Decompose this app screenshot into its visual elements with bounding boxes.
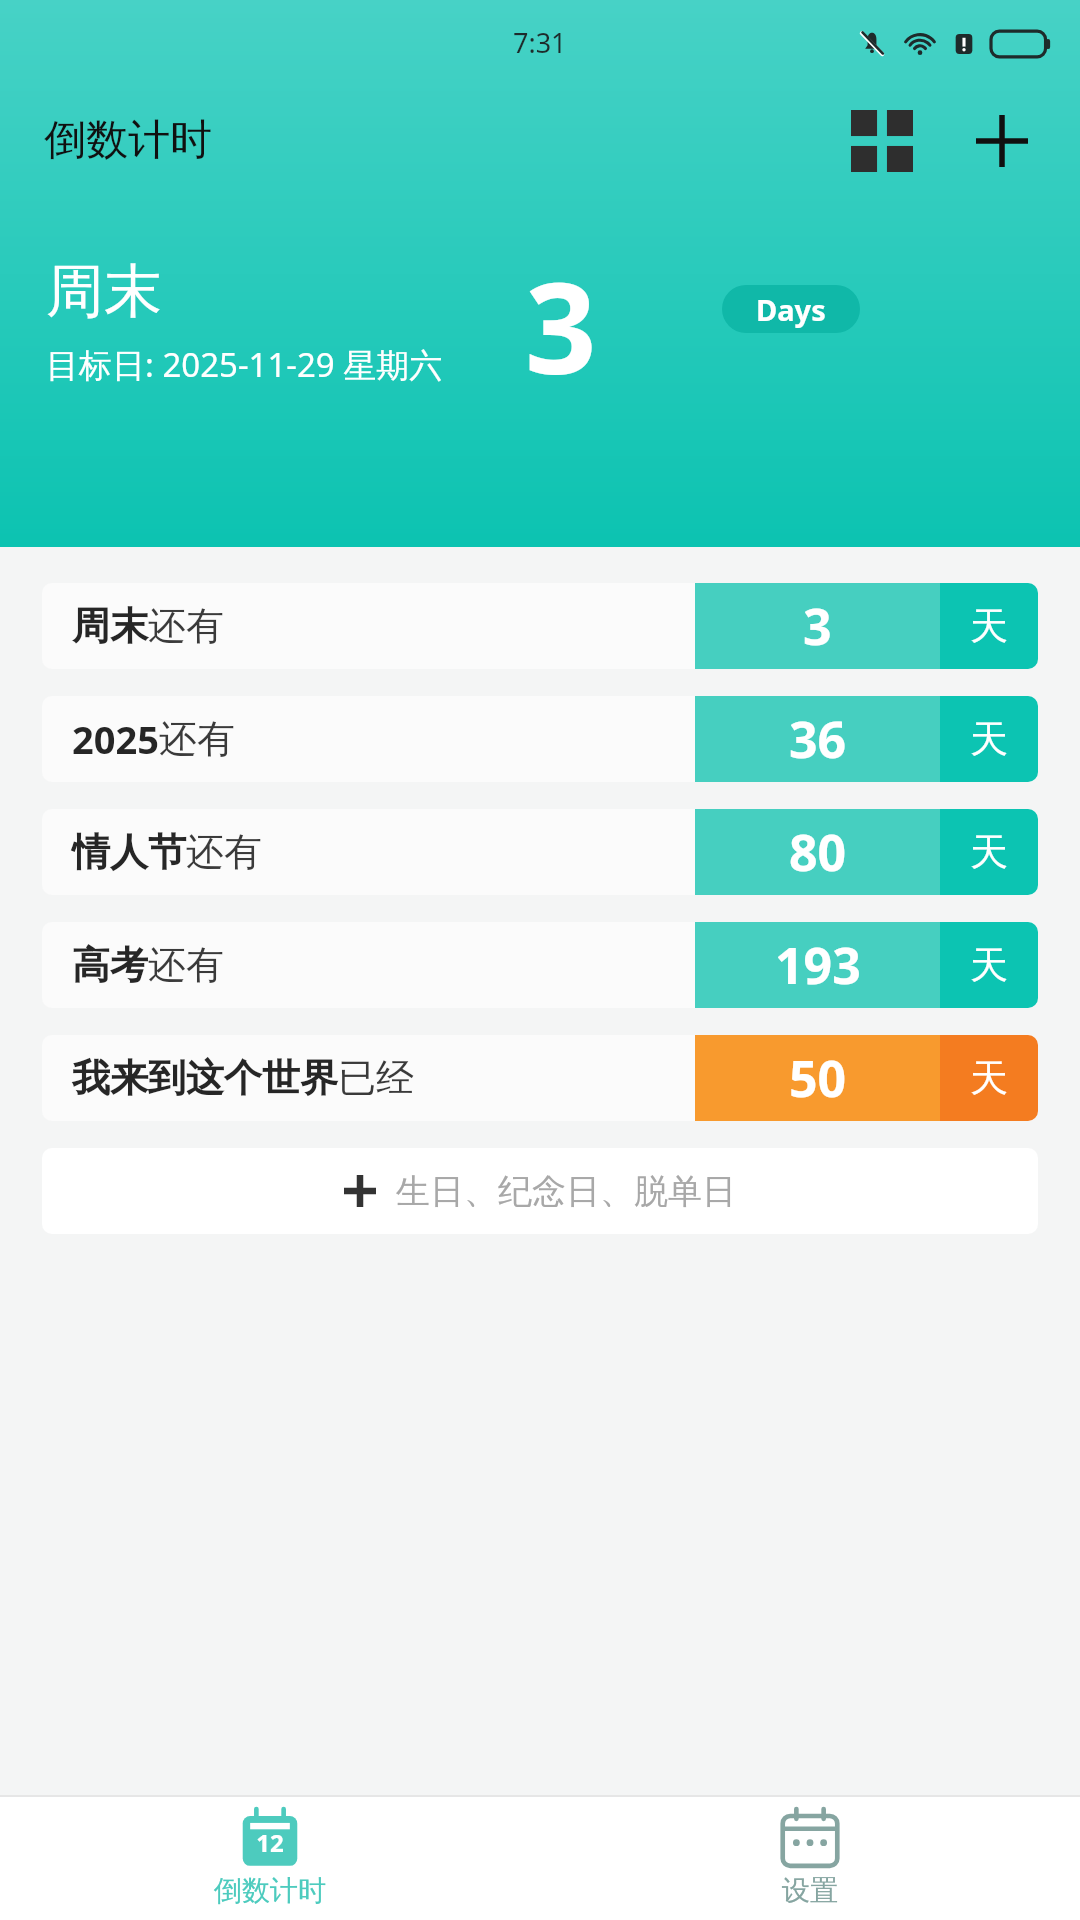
staticText: 12	[256, 1826, 284, 1859]
staticText: 天	[970, 1054, 1008, 1102]
staticText: Days	[756, 290, 826, 329]
button[interactable]: 情人节	[42, 809, 1038, 895]
button[interactable]: Grid view	[834, 93, 930, 189]
staticText: 3	[803, 592, 832, 660]
staticText: 周末	[72, 602, 148, 650]
staticText: 情人节	[72, 828, 186, 876]
button[interactable]: 12	[0, 1797, 540, 1920]
staticText: 天	[970, 715, 1008, 763]
staticText: 还有	[148, 941, 224, 989]
staticText: 80	[789, 818, 847, 886]
staticText: 设置	[782, 1873, 838, 1908]
staticText: 3	[525, 240, 597, 410]
staticText: 7:31	[513, 24, 567, 61]
button[interactable]: 2025	[42, 696, 1038, 782]
staticText: 还有	[186, 828, 262, 876]
staticText: 高考	[72, 941, 148, 989]
staticText: 还有	[148, 602, 224, 650]
staticText: 天	[970, 941, 1008, 989]
button[interactable]: 我来到这个世界	[42, 1035, 1038, 1121]
staticText: 周末	[46, 255, 162, 328]
button[interactable]: 高考	[42, 922, 1038, 1008]
button[interactable]: 设置	[540, 1797, 1080, 1920]
button[interactable]: 周末	[42, 583, 1038, 669]
staticText: 36	[789, 705, 847, 773]
staticText: 2025	[72, 713, 159, 765]
staticText: 天	[970, 828, 1008, 876]
staticText: 193	[775, 931, 861, 999]
staticText: 生日、纪念日、脱单日	[396, 1170, 736, 1213]
staticText: 倒数计时	[214, 1873, 326, 1908]
staticText: 天	[970, 602, 1008, 650]
staticText: 倒数计时	[44, 114, 212, 167]
staticText: 目标日: 2025-11-29 星期六	[46, 342, 443, 387]
button[interactable]: Days	[722, 285, 860, 333]
staticText: 我来到这个世界	[72, 1054, 338, 1102]
staticText: 还有	[159, 715, 235, 763]
button[interactable]: 生日、纪念日、脱单日	[42, 1148, 1038, 1234]
staticText: 已经	[338, 1054, 414, 1102]
staticText: 50	[789, 1044, 847, 1112]
button[interactable]: Add countdown	[954, 93, 1050, 189]
